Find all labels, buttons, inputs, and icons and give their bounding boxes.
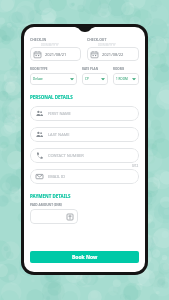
staticText: LAST NAME	[48, 132, 70, 137]
staticText: EMAIL ID	[48, 174, 66, 179]
staticText: CONTACT NUMBER	[48, 153, 84, 158]
staticText: PERSONAL DETAILS	[30, 94, 73, 100]
button[interactable]: 1 ROOM	[113, 73, 139, 85]
staticText: CHECK-IN	[30, 37, 47, 42]
staticText: FIRST NAME	[48, 111, 71, 116]
button[interactable]: EMAIL ID	[30, 169, 139, 184]
button[interactable]: CP	[82, 73, 108, 85]
staticText: RATE PLAN	[82, 67, 99, 71]
button[interactable]: CONTACT NUMBER	[30, 148, 139, 163]
button[interactable]: LAST NAME	[30, 127, 139, 142]
staticText: 1 ROOM	[116, 77, 128, 81]
staticText: 2021/08/22	[102, 52, 124, 57]
staticText: ROOM TYPE	[30, 67, 48, 71]
staticText: Book Now	[72, 254, 98, 261]
staticText: PAYMENT DETAILS	[30, 193, 71, 199]
button[interactable]: Book Now	[30, 251, 139, 263]
staticText: CP	[85, 77, 89, 81]
button[interactable]: 2021/08/21	[30, 47, 81, 61]
staticText: 0/12	[132, 164, 139, 168]
button[interactable]: 2021/08/22	[87, 47, 139, 61]
staticText: DD/MM/YYYY	[98, 43, 116, 47]
staticText: 2021/08/21	[45, 52, 67, 57]
button[interactable]: Deluxe	[30, 73, 77, 85]
staticText: PAID AMOUNT (INR)	[30, 203, 62, 207]
button[interactable]: Paid amount	[30, 209, 78, 224]
staticText: DD/MM/YYYY	[41, 43, 59, 47]
staticText: Deluxe	[33, 77, 43, 81]
staticText: ROOMS	[113, 67, 125, 71]
staticText: CHECK-OUT	[87, 37, 107, 42]
button[interactable]: FIRST NAME	[30, 106, 139, 121]
